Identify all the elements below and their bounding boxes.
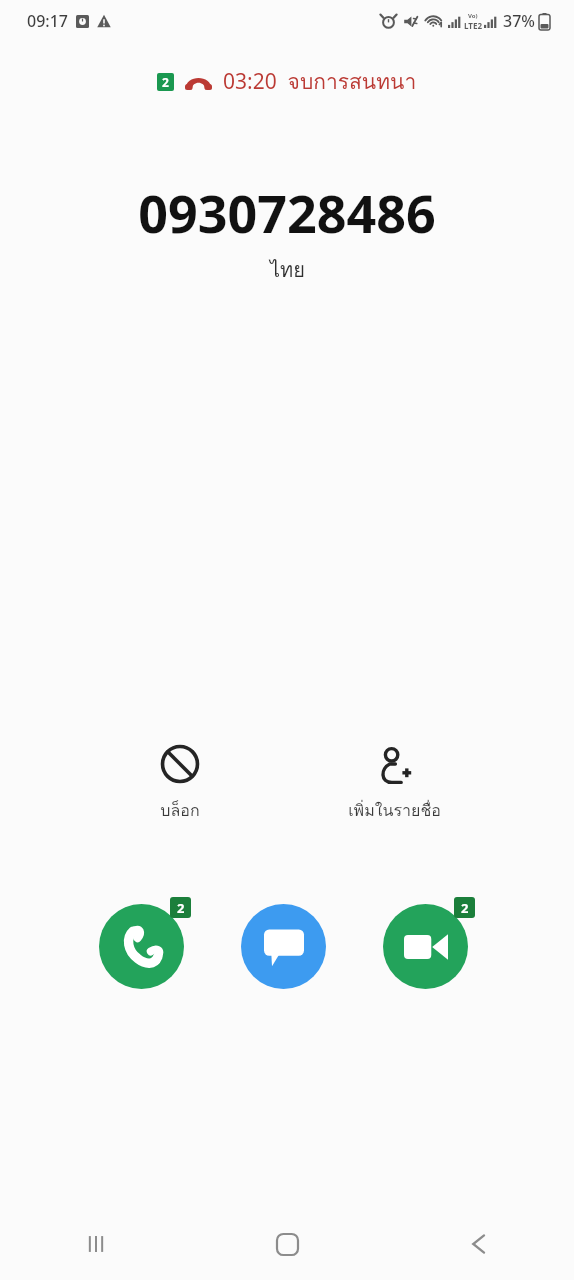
staticText: 2: [461, 899, 469, 917]
staticText: บล็อก: [160, 798, 200, 823]
staticText: LTE2: [464, 20, 482, 31]
staticText: Vo): [468, 12, 478, 20]
button[interactable]: Add to contacts: [287, 738, 501, 827]
button[interactable]: Video call: [383, 897, 475, 989]
staticText: เพิ่มในรายชื่อ: [348, 798, 441, 823]
staticText: 2: [162, 74, 169, 90]
button[interactable]: Back: [383, 1208, 574, 1280]
staticText: 09:17: [27, 10, 68, 32]
button[interactable]: Home: [192, 1208, 383, 1280]
staticText: 37%: [503, 10, 535, 32]
button[interactable]: Block: [73, 738, 287, 827]
staticText: 2: [177, 899, 185, 917]
staticText: 0930728486: [138, 177, 436, 248]
button[interactable]: Call: [99, 897, 191, 989]
button[interactable]: Recent apps: [0, 1208, 192, 1280]
staticText: 03:20 จบการสนทนา: [223, 65, 417, 98]
button[interactable]: Message: [241, 897, 333, 989]
staticText: ไทย: [270, 254, 305, 286]
